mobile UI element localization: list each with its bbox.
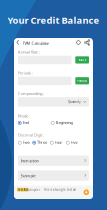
staticText: End xyxy=(23,120,29,125)
staticText: Four xyxy=(55,139,63,145)
button[interactable]: End xyxy=(18,120,30,125)
button[interactable]: Reset xyxy=(74,38,82,47)
staticText: Five xyxy=(71,139,78,145)
staticText: Decimal Digit : xyxy=(18,132,44,138)
staticText: PERIOD xyxy=(77,79,87,82)
staticText: › xyxy=(86,186,87,191)
button[interactable]: Example xyxy=(18,170,89,181)
staticText: Your Credit Balance xyxy=(7,14,99,26)
staticText: This is a Google test ad xyxy=(44,188,76,191)
button[interactable]: Three xyxy=(32,140,47,144)
staticText: Beginning xyxy=(56,120,73,125)
staticText: Periods : xyxy=(18,70,33,76)
staticText: Adocyder xyxy=(27,188,40,192)
button[interactable]: Five xyxy=(66,140,80,144)
staticText: RATE xyxy=(79,58,86,62)
button[interactable]: Four xyxy=(50,140,64,144)
button[interactable]: Beginning xyxy=(51,120,73,125)
staticText: Two xyxy=(23,139,30,145)
staticText: Three xyxy=(37,139,47,145)
staticText: Quarterly xyxy=(68,100,80,104)
button[interactable]: Back xyxy=(14,38,22,47)
staticText: Example xyxy=(21,173,36,178)
staticText: Mode : xyxy=(18,113,30,118)
button[interactable]: Share xyxy=(83,38,91,47)
staticText: Annual Rate : xyxy=(18,49,40,55)
staticText: Instruction xyxy=(21,158,39,163)
button[interactable]: PERIOD xyxy=(75,77,89,84)
staticText: Compounding : xyxy=(18,91,44,96)
button[interactable]: RATE xyxy=(75,56,89,63)
staticText: TVM Calculator xyxy=(22,41,49,46)
button[interactable]: Two xyxy=(18,140,31,144)
button[interactable]: Instruction xyxy=(18,155,89,166)
staticText: Test Ad xyxy=(18,188,28,191)
button[interactable]: Quarterly xyxy=(18,97,89,107)
